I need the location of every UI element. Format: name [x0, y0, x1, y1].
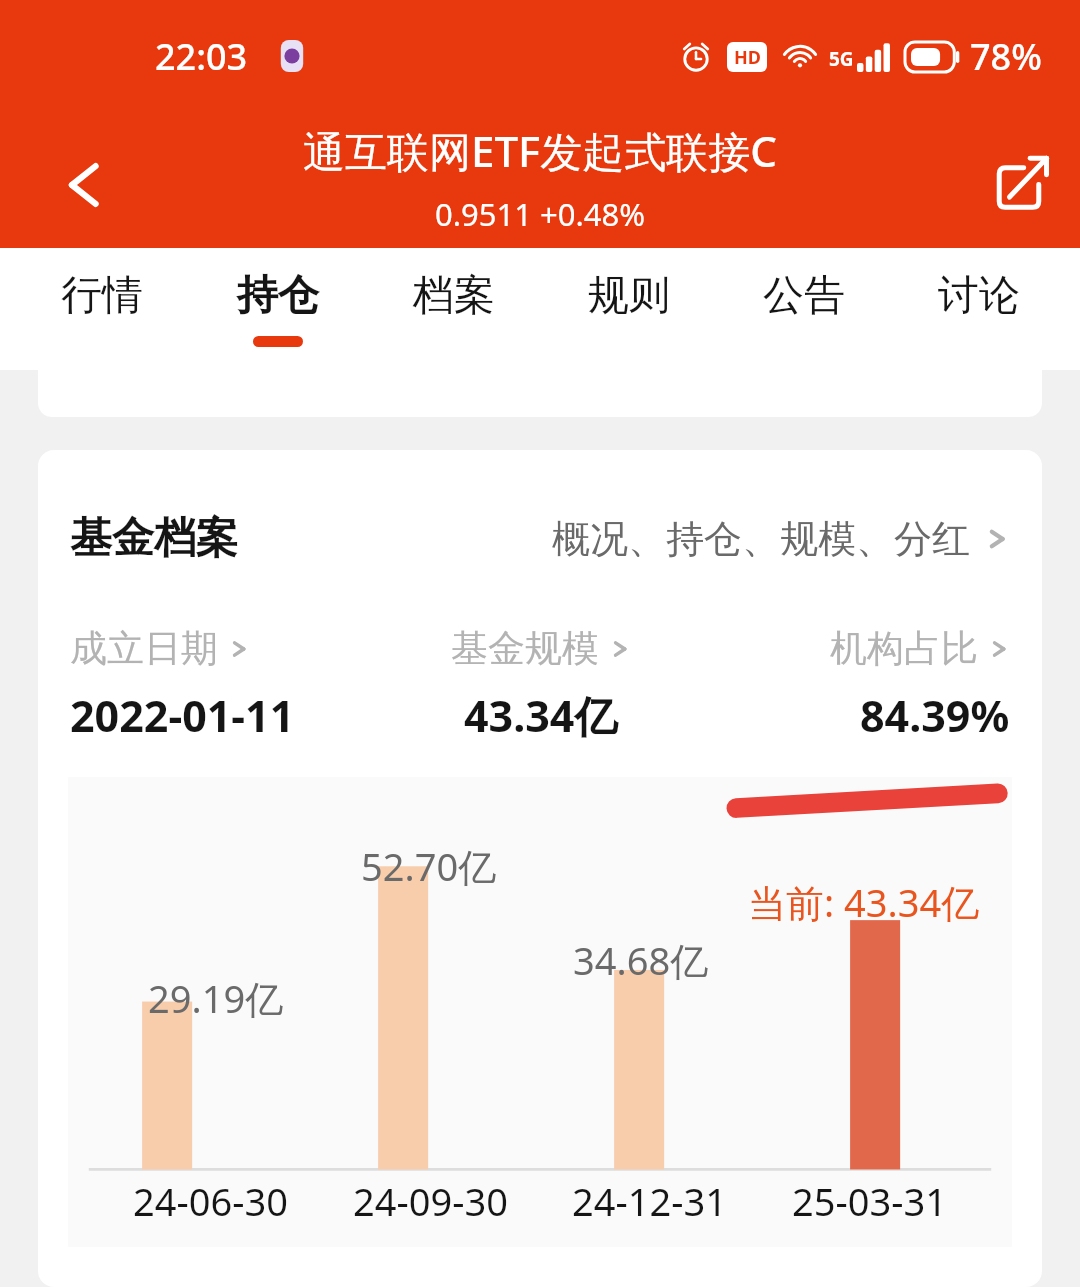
staticText: 78%: [970, 32, 1042, 81]
staticText: 24-06-30: [133, 1175, 288, 1227]
staticText: 84.39%: [860, 686, 1010, 745]
staticText: 52.70亿: [361, 840, 497, 892]
staticText: 基金档案: [70, 512, 238, 565]
staticText: 公告: [763, 270, 845, 322]
staticText: 24-12-31: [572, 1175, 727, 1227]
staticText: 机构占比: [830, 625, 978, 672]
button[interactable]: 公告: [716, 248, 891, 370]
staticText: 2022-01-11: [70, 686, 295, 745]
staticText: 档案: [413, 270, 495, 322]
staticText: 当前: 43.34亿: [748, 876, 980, 928]
staticText: 基金规模: [451, 625, 599, 672]
button[interactable]: 讨论: [891, 248, 1066, 370]
staticText: 0.9511 +0.48%: [435, 193, 646, 235]
button[interactable]: Share: [976, 142, 1062, 228]
staticText: 概况、持仓、规模、分红: [552, 515, 970, 563]
staticText: 5G: [829, 46, 854, 72]
staticText: HD: [734, 45, 761, 70]
button[interactable]: 档案: [366, 248, 541, 370]
staticText: 34.68亿: [573, 934, 709, 986]
staticText: 讨论: [938, 270, 1020, 322]
staticText: 持仓: [237, 270, 319, 322]
button[interactable]: 基金规模: [384, 625, 697, 745]
button[interactable]: 基金档案: [70, 512, 1010, 565]
staticText: 规则: [588, 270, 670, 322]
staticText: 25-03-31: [792, 1175, 947, 1227]
button[interactable]: 行情: [14, 248, 190, 370]
button[interactable]: 规则: [541, 248, 716, 370]
button[interactable]: 成立日期: [70, 625, 384, 745]
staticText: 43.34亿: [464, 686, 618, 745]
button[interactable]: 持仓: [190, 248, 366, 370]
staticText: 成立日期: [70, 625, 218, 672]
staticText: 通互联网ETF发起式联接C: [303, 122, 777, 179]
staticText: 24-09-30: [353, 1175, 508, 1227]
button[interactable]: Back: [32, 142, 118, 228]
staticText: 22:03: [155, 32, 248, 81]
staticText: 29.19亿: [148, 972, 284, 1024]
staticText: 行情: [61, 270, 143, 322]
button[interactable]: 机构占比: [697, 625, 1010, 745]
